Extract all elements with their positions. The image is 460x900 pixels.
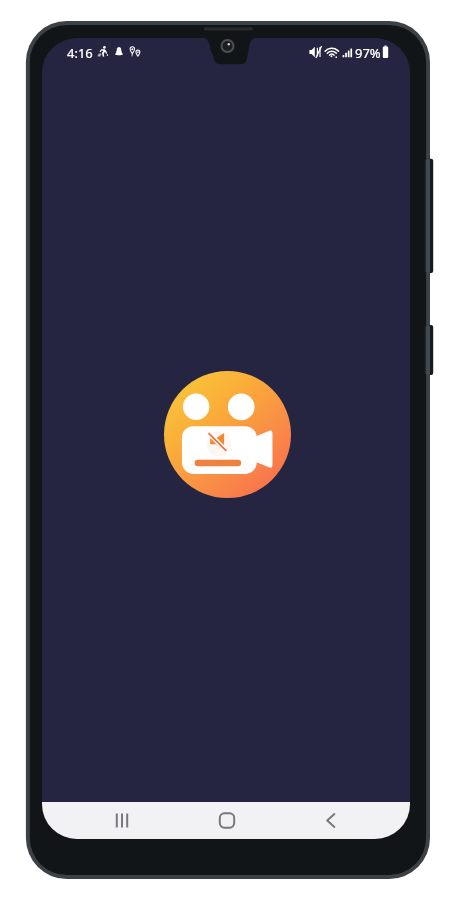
staticText: 4:16	[67, 44, 93, 62]
button[interactable]: App logo	[164, 371, 291, 498]
button[interactable]: Back	[311, 802, 351, 839]
button[interactable]: Home	[207, 802, 247, 839]
button[interactable]: Recents	[102, 802, 142, 839]
staticText: 97%	[355, 44, 381, 62]
